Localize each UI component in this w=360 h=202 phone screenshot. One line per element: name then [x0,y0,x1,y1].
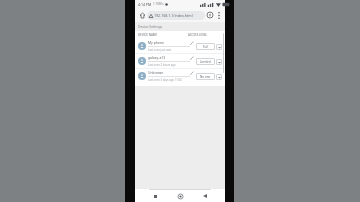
button[interactable]: My phone [135,39,225,53]
button[interactable]: Full [196,43,215,50]
staticText: Full [203,45,208,49]
staticText: No one [200,75,211,79]
staticText: Last seen 2 hours ago [148,63,176,67]
staticText: ACCESS LEVEL [188,33,208,37]
staticText: Unknown [148,70,164,75]
button[interactable]: Back [200,191,210,201]
staticText: galaxy-a13 [148,55,166,60]
button[interactable]: Expand [216,44,222,50]
staticText: Limited [200,60,211,64]
button[interactable]: Unknown [135,69,225,83]
button[interactable]: Home [175,191,185,201]
button[interactable]: Page info [205,10,215,20]
button[interactable]: galaxy-a13 [135,54,225,68]
button[interactable]: Limited [196,58,215,65]
staticText: My phone [148,40,164,45]
button[interactable]: No one [196,73,215,80]
button[interactable]: Recent apps [150,191,160,201]
staticText: 192.168.1.1/index.html [154,13,193,18]
button[interactable]: Edit name [189,40,194,45]
button[interactable]: More options [215,11,223,19]
button[interactable]: Edit name [189,70,194,75]
button[interactable]: Expand [216,59,222,65]
staticText: Last seen just now [148,48,172,52]
staticText: Last seen 3 days ago 11:04 [148,78,182,82]
button[interactable]: Edit name [189,55,194,60]
button[interactable]: Expand [216,74,222,80]
button[interactable]: 192.168.1.1/index.html [147,11,205,20]
staticText: 4:14 PM [138,2,152,7]
staticText: 1.1KB/s [153,2,164,6]
staticText: Device Settings [138,24,163,29]
staticText: DEVICE NAME [138,33,158,37]
button[interactable]: Home [137,10,147,20]
